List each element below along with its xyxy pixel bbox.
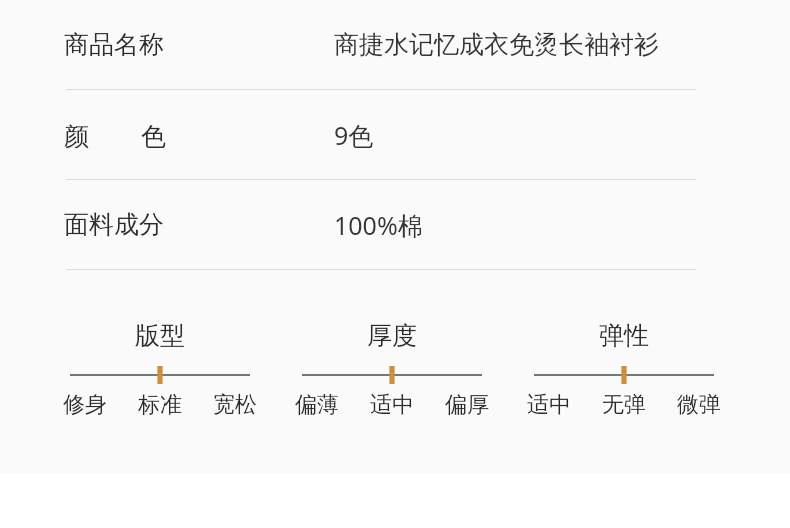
staticText: 无弹 [602,391,646,419]
button[interactable]: 修身 [63,391,107,419]
button[interactable]: 标准 [138,391,182,419]
staticText: 适中 [527,391,571,419]
button[interactable]: 无弹 [602,391,646,419]
button[interactable]: 适中 [370,391,414,419]
button[interactable]: 商品名称 [0,0,790,89]
staticText: 适中 [370,391,414,419]
staticText: 厚度 [367,320,417,351]
staticText: 颜 色 [64,118,167,152]
staticText: 9色 [334,118,374,152]
staticText: 偏厚 [445,391,489,419]
staticText: 面料成分 [64,209,164,240]
other: 厚度 [302,365,482,385]
staticText: 偏薄 [295,391,339,419]
other: 弹性 [534,365,714,385]
button[interactable]: 适中 [527,391,571,419]
staticText: 版型 [135,320,185,351]
button[interactable]: 偏厚 [445,391,489,419]
staticText: 弹性 [599,320,649,351]
button[interactable]: 厚度 [295,320,489,419]
button[interactable]: 弹性 [527,320,721,419]
staticText: 宽松 [213,391,257,419]
staticText: 100%棉 [334,208,423,242]
staticText: 微弹 [677,391,721,419]
button[interactable]: 颜 色 [0,90,790,179]
staticText: 商捷水记忆成衣免烫长袖衬衫 [334,29,659,60]
staticText: 标准 [138,391,182,419]
button[interactable]: 微弹 [677,391,721,419]
staticText: 商品名称 [64,29,164,60]
button[interactable]: 面料成分 [0,180,790,269]
button[interactable]: 宽松 [213,391,257,419]
other: 版型 [70,365,250,385]
staticText: 修身 [63,391,107,419]
button[interactable]: 版型 [63,320,257,419]
button[interactable]: 偏薄 [295,391,339,419]
